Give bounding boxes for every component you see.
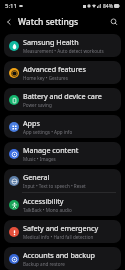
button[interactable]: Accessibility: [4, 193, 121, 216]
button[interactable]: Manage content: [4, 142, 121, 165]
staticText: Accessibility: [23, 196, 64, 206]
staticText: General: [23, 172, 50, 182]
staticText: App settings • App info: [23, 129, 73, 135]
staticText: Advanced features: [23, 64, 86, 74]
staticText: TalkBack • Mono audio: [23, 207, 72, 213]
staticText: Music • Images: [23, 156, 56, 162]
button[interactable]: Accounts and backup: [4, 247, 121, 270]
button[interactable]: Back: [0, 13, 18, 31]
button[interactable]: Samsung Health: [4, 34, 121, 57]
button[interactable]: Safety and emergency: [4, 220, 121, 243]
staticText: Power saving: [23, 102, 52, 108]
button[interactable]: Apps: [4, 115, 121, 138]
staticText: Accounts and backup: [23, 250, 95, 260]
staticText: Manage content: [23, 145, 79, 155]
staticText: Input • Text to speech • Reset: [23, 183, 86, 189]
staticText: Battery and device care: [23, 91, 102, 101]
staticText: 84%: [103, 3, 113, 10]
staticText: Backup and restore: [23, 261, 65, 267]
button[interactable]: Advanced features: [4, 61, 121, 84]
staticText: Watch settings: [18, 16, 79, 28]
staticText: Home key • Gestures: [23, 75, 68, 81]
button[interactable]: Search: [105, 13, 123, 31]
button[interactable]: Battery and device care: [4, 88, 121, 111]
staticText: 5:11: [5, 2, 17, 10]
staticText: Medical info • Hard fall detection: [23, 234, 94, 240]
staticText: Measurement • Auto detect workouts: [23, 48, 104, 54]
staticText: Samsung Health: [23, 37, 79, 47]
staticText: Safety and emergency: [23, 223, 99, 233]
button[interactable]: General: [4, 169, 121, 192]
staticText: Apps: [23, 118, 40, 128]
